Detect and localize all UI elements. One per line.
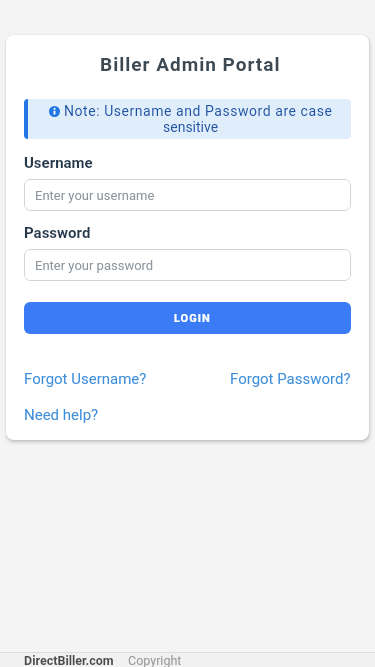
staticText: sensitive [163,119,219,135]
staticText: Biller Admin Portal [100,53,281,75]
staticText: Note: Username and Password are case [64,103,333,119]
staticText: Enter your password [35,258,154,273]
staticText: LOGIN [174,312,211,325]
button[interactable]: Enter your password [24,249,351,281]
staticText: Enter your username [35,188,155,203]
staticText: Password [24,224,91,242]
button[interactable]: Enter your username [24,179,351,211]
staticText: Copyright [128,653,182,667]
staticText: Username [24,154,93,172]
button[interactable]: Need help? [24,406,99,424]
button[interactable]: LOGIN [24,302,351,334]
button[interactable]: DirectBiller.com [24,653,375,667]
button[interactable]: Forgot Password? [230,370,351,388]
button[interactable]: Forgot Username? [24,370,147,388]
staticText: DirectBiller.com [24,653,114,667]
